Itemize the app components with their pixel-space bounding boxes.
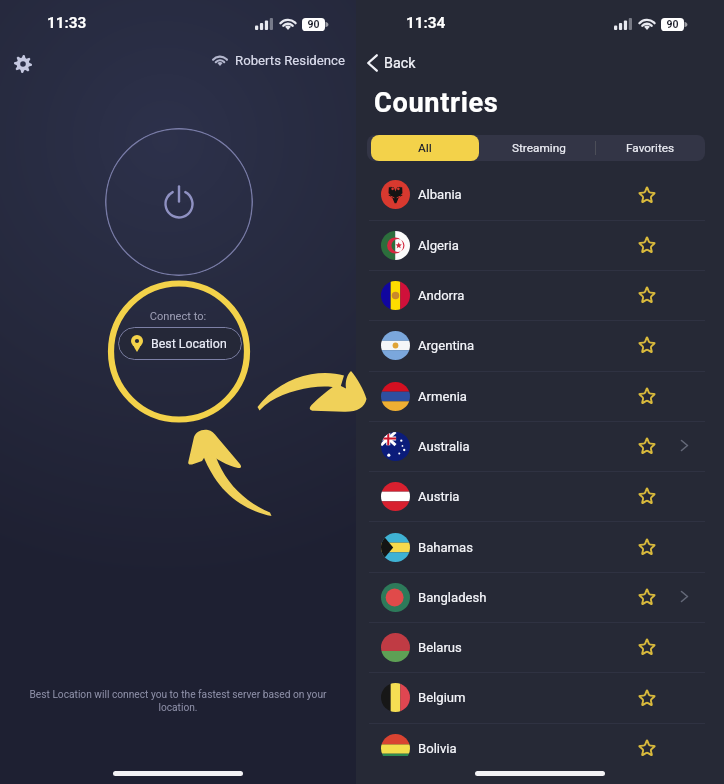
button[interactable]: Settings bbox=[14, 55, 32, 73]
staticText: Argentina bbox=[418, 338, 475, 353]
staticText: 11:34 bbox=[406, 14, 446, 32]
button[interactable]: Bahamas bbox=[356, 522, 724, 572]
button[interactable]: Favorite Bahamas bbox=[638, 538, 656, 556]
button[interactable]: Favorite Belarus bbox=[638, 638, 656, 656]
staticText: Algeria bbox=[418, 238, 459, 253]
staticText: Belgium bbox=[418, 690, 466, 705]
staticText: Belarus bbox=[418, 640, 462, 655]
button[interactable]: Favorite Albania bbox=[638, 186, 656, 204]
button[interactable]: Best Location bbox=[118, 327, 242, 360]
button[interactable]: Favorite Argentina bbox=[638, 336, 656, 354]
staticText: Austria bbox=[418, 489, 460, 504]
staticText: All bbox=[418, 141, 432, 155]
button[interactable]: Belarus bbox=[356, 622, 724, 672]
staticText: Bahamas bbox=[418, 540, 473, 555]
staticText: Countries bbox=[374, 87, 499, 119]
button[interactable]: Open Australia bbox=[680, 439, 689, 452]
staticText: 90 bbox=[302, 18, 325, 30]
button[interactable]: Albania bbox=[356, 169, 724, 219]
button[interactable]: Australia bbox=[356, 421, 724, 471]
button[interactable]: Favorite Andorra bbox=[638, 286, 656, 304]
staticText: Bangladesh bbox=[418, 590, 487, 605]
button[interactable]: Algeria bbox=[356, 220, 724, 270]
button[interactable]: Bolivia bbox=[356, 723, 724, 756]
button[interactable]: All bbox=[371, 135, 479, 161]
button[interactable]: Favorite Austria bbox=[638, 487, 656, 505]
button[interactable]: Favorite Armenia bbox=[638, 387, 656, 405]
staticText: Armenia bbox=[418, 389, 467, 404]
staticText: Australia bbox=[418, 439, 470, 454]
staticText: Andorra bbox=[418, 288, 465, 303]
button[interactable]: Favorite Australia bbox=[638, 437, 656, 455]
staticText: Best Location will connect you to the fa… bbox=[29, 689, 327, 714]
button[interactable]: Back bbox=[367, 54, 416, 72]
staticText: 90 bbox=[661, 18, 684, 30]
button[interactable]: Argentina bbox=[356, 320, 724, 370]
staticText: Connect to: bbox=[0, 310, 356, 323]
button[interactable]: Favorite Belgium bbox=[638, 689, 656, 707]
button[interactable]: Favorites bbox=[596, 135, 704, 161]
button[interactable]: Andorra bbox=[356, 270, 724, 320]
button[interactable]: Favorite Bolivia bbox=[638, 739, 656, 756]
staticText: Streaming bbox=[512, 141, 566, 155]
button[interactable]: Open Bangladesh bbox=[680, 590, 689, 603]
button[interactable]: Roberts Residence bbox=[213, 53, 345, 68]
button[interactable]: Power bbox=[105, 128, 253, 276]
staticText: Roberts Residence bbox=[235, 53, 345, 68]
staticText: Albania bbox=[418, 187, 462, 202]
staticText: Best Location bbox=[151, 336, 227, 351]
staticText: Favorites bbox=[626, 141, 675, 155]
staticText: 11:33 bbox=[47, 14, 87, 32]
button[interactable]: Favorite Algeria bbox=[638, 236, 656, 254]
button[interactable]: Favorite Bangladesh bbox=[638, 588, 656, 606]
staticText: Bolivia bbox=[418, 741, 457, 756]
button[interactable]: Belgium bbox=[356, 672, 724, 722]
staticText: Back bbox=[384, 55, 416, 72]
button[interactable]: Austria bbox=[356, 471, 724, 521]
button[interactable]: Bangladesh bbox=[356, 572, 724, 622]
button[interactable]: Streaming bbox=[483, 135, 595, 161]
button[interactable]: Armenia bbox=[356, 371, 724, 421]
